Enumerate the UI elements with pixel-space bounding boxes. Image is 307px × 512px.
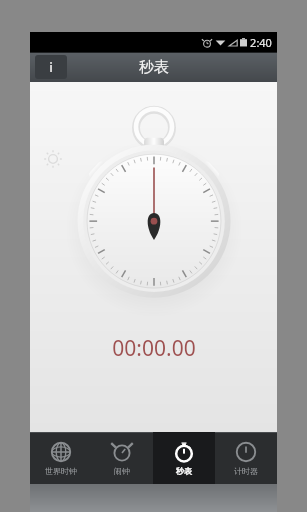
staticText: 秒表 bbox=[139, 58, 169, 77]
staticText: 世界时钟 bbox=[45, 466, 77, 476]
staticText: i bbox=[49, 59, 53, 75]
button[interactable]: 闹钟 bbox=[91, 432, 153, 484]
staticText: 2:40 bbox=[250, 35, 272, 50]
button[interactable]: Info bbox=[35, 55, 67, 79]
staticText: 计时器 bbox=[234, 466, 258, 476]
button[interactable]: 计时器 bbox=[215, 432, 277, 484]
staticText: 秒表 bbox=[176, 466, 192, 476]
button[interactable]: 秒表 bbox=[153, 432, 215, 484]
button[interactable]: 世界时钟 bbox=[30, 432, 91, 484]
button[interactable]: Brightness bbox=[42, 148, 64, 170]
staticText: 闹钟 bbox=[114, 466, 130, 476]
staticText: 00:00.00 bbox=[112, 334, 196, 363]
